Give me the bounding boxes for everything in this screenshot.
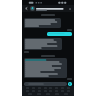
button[interactable]: Send [68,82,72,86]
button[interactable]: More options [68,7,72,11]
button[interactable] [24,38,62,50]
button[interactable]: Back [24,6,29,11]
button[interactable]: Contact avatar [30,6,35,11]
button[interactable] [24,58,67,78]
button[interactable] [24,18,61,28]
button[interactable]: Message input [24,82,67,86]
button[interactable] [47,32,72,36]
